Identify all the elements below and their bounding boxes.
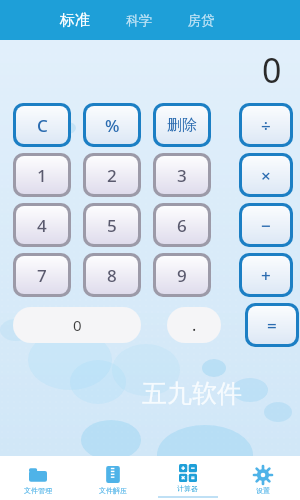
staticText: + xyxy=(261,264,271,287)
button[interactable]: × xyxy=(239,153,293,197)
button[interactable]: + xyxy=(239,253,293,297)
button[interactable]: 文件管理 xyxy=(0,461,75,495)
button[interactable]: 3 xyxy=(153,153,211,197)
button[interactable]: − xyxy=(239,203,293,247)
button[interactable]: 7 xyxy=(13,253,71,297)
staticText: 9 xyxy=(177,264,187,287)
staticText: 2 xyxy=(107,164,117,187)
button[interactable]: 房贷 xyxy=(184,6,218,34)
button[interactable]: 删除 xyxy=(153,103,211,147)
staticText: 房贷 xyxy=(188,12,214,28)
staticText: 6 xyxy=(177,214,187,237)
staticText: 0 xyxy=(73,315,82,335)
staticText: − xyxy=(261,214,271,237)
staticText: 3 xyxy=(177,164,187,187)
staticText: 计算器 xyxy=(177,484,198,493)
staticText: % xyxy=(105,114,120,137)
button[interactable]: 2 xyxy=(83,153,141,197)
button[interactable]: 标准 xyxy=(56,5,94,36)
button[interactable]: = xyxy=(245,303,299,347)
button[interactable]: 设置 xyxy=(225,461,300,495)
staticText: 8 xyxy=(107,264,117,287)
staticText: = xyxy=(267,314,277,337)
button[interactable]: 5 xyxy=(83,203,141,247)
button[interactable]: C xyxy=(13,103,71,147)
staticText: 0 xyxy=(262,47,282,93)
staticText: 科学 xyxy=(126,12,152,28)
staticText: 5 xyxy=(107,214,117,237)
staticText: 1 xyxy=(37,164,47,187)
button[interactable]: 9 xyxy=(153,253,211,297)
staticText: 7 xyxy=(37,264,47,287)
button[interactable]: 文件解压 xyxy=(75,461,150,495)
staticText: 文件管理 xyxy=(24,486,52,495)
button[interactable]: 8 xyxy=(83,253,141,297)
staticText: C xyxy=(37,114,48,137)
button[interactable]: 计算器 xyxy=(150,459,225,498)
button[interactable]: 科学 xyxy=(122,6,156,34)
staticText: 4 xyxy=(37,214,47,237)
button[interactable]: % xyxy=(83,103,141,147)
staticText: 删除 xyxy=(167,116,197,135)
staticText: 设置 xyxy=(256,486,270,495)
staticText: ÷ xyxy=(261,114,271,137)
staticText: × xyxy=(261,164,271,187)
button[interactable]: 1 xyxy=(13,153,71,197)
staticText: 五九软件 xyxy=(142,378,242,409)
button[interactable]: ÷ xyxy=(239,103,293,147)
button[interactable]: 0 xyxy=(13,307,141,343)
button[interactable]: . xyxy=(167,307,221,343)
button[interactable]: 4 xyxy=(13,203,71,247)
staticText: . xyxy=(192,314,197,336)
staticText: 文件解压 xyxy=(99,486,127,495)
staticText: 标准 xyxy=(60,11,90,30)
button[interactable]: 6 xyxy=(153,203,211,247)
